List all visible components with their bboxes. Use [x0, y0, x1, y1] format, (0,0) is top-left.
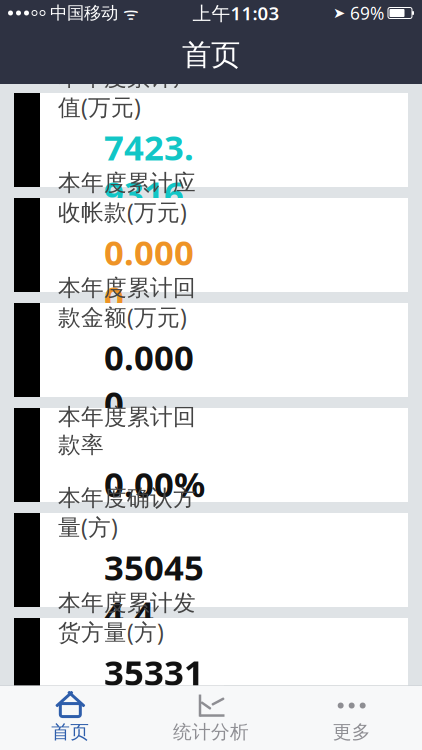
staticText: 统计分析 [173, 720, 249, 743]
button[interactable]: 首页 [0, 686, 141, 750]
button[interactable]: 统计分析 [141, 686, 281, 750]
button[interactable]: 更多 [281, 686, 422, 750]
staticText: 350454.4 [104, 544, 204, 636]
button[interactable]: 本年度累计产值(万元) [14, 93, 408, 187]
button[interactable]: 本年度累计应收帐款(万元) [14, 198, 408, 292]
staticText: ➤ [333, 5, 345, 21]
staticText: 上午11:03 [192, 1, 279, 25]
staticText: 中国移动 [45, 2, 118, 24]
staticText: 0.00% [104, 461, 205, 507]
button[interactable]: 本年度累计发货方量(方) [14, 618, 408, 712]
staticText: 首页 [51, 720, 89, 743]
staticText: 本年度累计回款金额(万元) [58, 274, 196, 332]
staticText: 本年度累计产值(万元) [58, 64, 196, 122]
staticText: 0.0000 [104, 229, 194, 321]
staticText: 本年度确认方量(方) [58, 484, 196, 542]
staticText: 本年度累计发货方量(方) [58, 589, 196, 647]
staticText: ᯤ [118, 1, 139, 24]
button[interactable]: 本年度累计回款金额(万元) [14, 303, 408, 397]
staticText: 更多 [333, 720, 371, 743]
button[interactable]: 本年度确认方量(方) [14, 513, 408, 607]
staticText: 本年度累计应收帐款(万元) [58, 169, 196, 227]
button[interactable]: 本年度累计回款率 [14, 408, 408, 502]
staticText: 69% [345, 1, 384, 24]
staticText: 首页 [182, 37, 240, 73]
staticText: 7423.9316 [104, 124, 194, 216]
staticText: 本年度累计回款率 [58, 403, 196, 459]
staticText: 353316.8 [104, 649, 204, 741]
staticText: 0.0000 [104, 334, 194, 426]
